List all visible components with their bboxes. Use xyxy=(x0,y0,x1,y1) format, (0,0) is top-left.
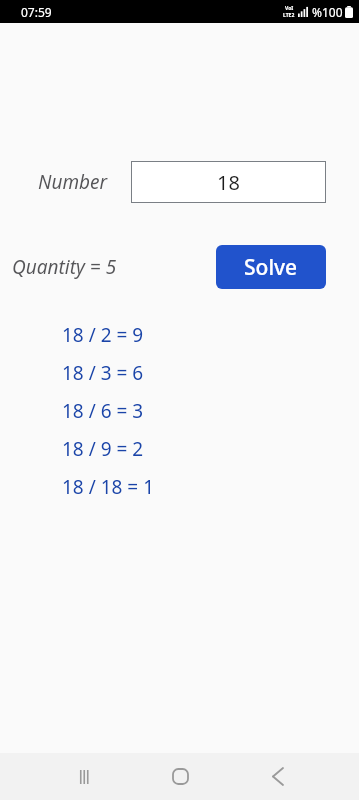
button[interactable]: Solve xyxy=(216,245,326,289)
staticText: 18 / 2 = 9 xyxy=(62,322,144,348)
button[interactable]: Home xyxy=(156,753,204,800)
staticText: Quantity = 5 xyxy=(12,254,117,280)
button[interactable]: Recent apps xyxy=(62,753,110,800)
staticText: 07:59 xyxy=(21,4,52,20)
staticText: 18 / 9 = 2 xyxy=(62,436,144,462)
staticText: LTE2 xyxy=(283,12,295,19)
staticText: Solve xyxy=(244,253,298,282)
staticText: 18 xyxy=(131,169,326,196)
staticText: Number xyxy=(38,169,108,195)
staticText: 18 / 18 = 1 xyxy=(62,474,155,500)
staticText: %100 xyxy=(312,4,343,20)
button[interactable]: 18 xyxy=(131,161,326,203)
button[interactable]: Back xyxy=(254,753,302,800)
staticText: 18 / 6 = 3 xyxy=(62,398,144,424)
staticText: 18 / 3 = 6 xyxy=(62,360,144,386)
staticText: VoI xyxy=(285,5,294,12)
